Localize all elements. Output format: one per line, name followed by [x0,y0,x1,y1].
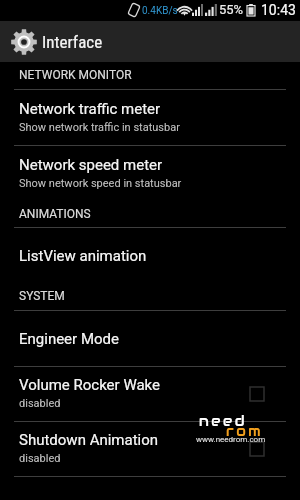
staticText: Show network speed in statusbar [19,177,182,190]
staticText: 10:43 [261,2,296,18]
button[interactable]: Volume Rocker Wake [0,367,300,421]
button[interactable]: Network speed meter [0,146,300,201]
staticText: Network traffic meter [19,100,161,118]
staticText: Engineer Mode [19,330,119,348]
staticText: ListView animation [19,247,147,265]
other: Settings [11,29,37,55]
button[interactable]: Settings [0,21,300,62]
button[interactable]: Toggle Shutdown Animation [250,442,264,456]
button[interactable]: Toggle Volume Rocker Wake [250,387,264,401]
staticText: 55% [219,2,244,17]
staticText: Volume Rocker Wake [19,376,161,394]
button[interactable]: Engineer Mode [0,311,300,366]
button[interactable]: Shutdown Animation [0,422,300,476]
button[interactable]: Network traffic meter [0,90,300,145]
staticText: need [199,412,248,430]
staticText: Show network traffic in statusbar [19,121,180,134]
staticText: ANIMATIONS [19,207,91,221]
staticText: Interface [42,32,103,52]
staticText: SYSTEM [19,289,65,303]
staticText: disabled [19,452,61,465]
staticText: NETWORK MONITOR [19,68,132,82]
staticText: www.needrom.com [196,435,266,444]
staticText: Network speed meter [19,156,163,174]
staticText: 0.4KB/s [142,5,178,17]
staticText: rom [226,422,264,440]
button[interactable]: ListView animation [0,228,300,283]
staticText: disabled [19,397,61,410]
staticText: Shutdown Animation [19,431,159,449]
